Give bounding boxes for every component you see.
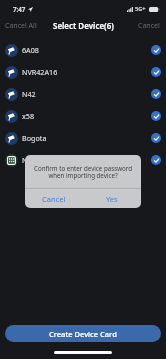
- staticText: Confirm to enter device password when im…: [31, 164, 135, 180]
- button[interactable]: 6A08: [0, 39, 166, 61]
- staticText: x58: [22, 111, 35, 121]
- staticText: Bogota: [22, 133, 47, 143]
- staticText: NVR4216: [22, 155, 53, 165]
- button[interactable]: N42: [0, 83, 166, 105]
- staticText: NVR42A16: [22, 67, 58, 77]
- staticText: 6A08: [22, 45, 39, 55]
- staticText: Yes: [106, 194, 118, 204]
- button[interactable]: Cancel: [132, 18, 166, 34]
- button[interactable]: Yes: [83, 189, 141, 208]
- staticText: Cancel: [42, 194, 66, 204]
- staticText: Cancel All: [5, 21, 37, 31]
- button[interactable]: Create Device Card: [5, 325, 161, 342]
- button[interactable]: NVR42A16: [0, 61, 166, 83]
- staticText: 5G+: [135, 5, 146, 13]
- staticText: Create Device Card: [49, 329, 117, 339]
- button[interactable]: Cancel: [25, 189, 83, 208]
- button[interactable]: x58: [0, 105, 166, 127]
- staticText: N42: [22, 89, 36, 99]
- button[interactable]: NVR4216: [0, 149, 166, 171]
- staticText: 7:47: [13, 5, 26, 13]
- button[interactable]: Bogota: [0, 127, 166, 149]
- button[interactable]: Cancel All: [0, 18, 42, 34]
- staticText: Cancel: [138, 21, 160, 31]
- staticText: Select Device(6): [53, 20, 114, 31]
